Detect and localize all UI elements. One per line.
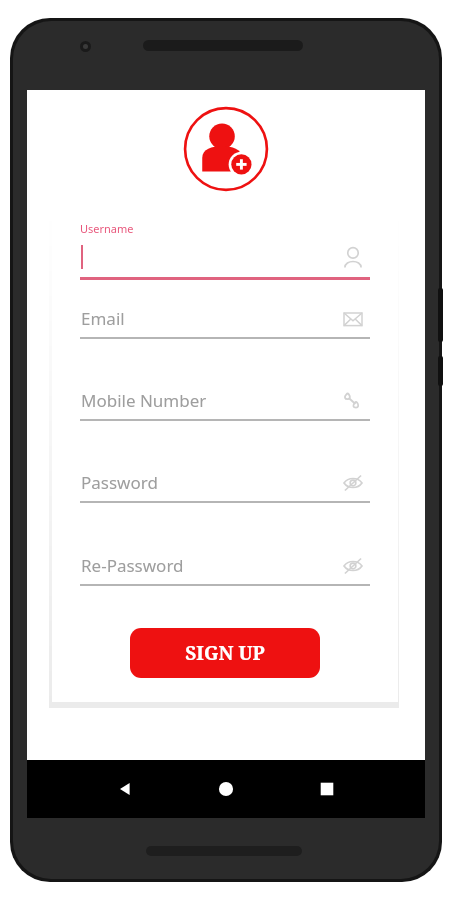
staticText: Username bbox=[80, 221, 134, 236]
button[interactable]: Email bbox=[80, 303, 370, 345]
other: Add user logo bbox=[182, 105, 270, 193]
staticText: Password bbox=[81, 471, 158, 494]
staticText: Mobile Number bbox=[81, 389, 207, 412]
other: Email bbox=[338, 304, 368, 334]
other: Mobile Number bbox=[338, 386, 368, 416]
other: Show password bbox=[338, 551, 368, 581]
staticText: SIGN UP bbox=[185, 640, 265, 666]
button[interactable]: Re-Password bbox=[80, 550, 370, 592]
staticText: Email bbox=[81, 307, 125, 330]
button[interactable]: Back bbox=[111, 774, 141, 804]
other: Username bbox=[338, 243, 368, 273]
button[interactable]: Password bbox=[80, 467, 370, 509]
button[interactable]: Recent apps bbox=[312, 774, 342, 804]
staticText: Re-Password bbox=[81, 554, 184, 577]
button[interactable]: SIGN UP bbox=[130, 628, 320, 678]
other: Show password bbox=[338, 468, 368, 498]
button[interactable]: Mobile Number bbox=[80, 385, 370, 427]
button[interactable]: Home bbox=[211, 774, 241, 804]
button[interactable]: Username bbox=[80, 221, 370, 283]
